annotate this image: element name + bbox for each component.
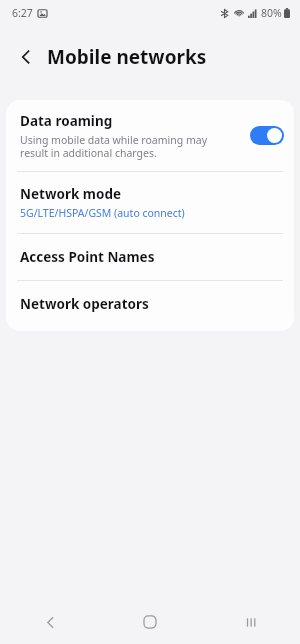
button[interactable]: Home (100, 600, 200, 644)
button[interactable]: Data roaming (6, 100, 294, 171)
button[interactable]: Recent apps (200, 600, 300, 644)
staticText: Network mode (20, 185, 121, 203)
button[interactable]: Access Point Names (6, 234, 294, 280)
staticText: Access Point Names (20, 248, 155, 266)
staticText: Data roaming (20, 112, 113, 130)
staticText: 80% (261, 6, 282, 20)
staticText: 6:27 (12, 6, 33, 20)
button[interactable]: Back (0, 600, 100, 644)
staticText: Using mobile data while roaming may resu… (20, 133, 207, 160)
staticText: 5G/LTE/HSPA/GSM (auto connect) (20, 206, 185, 220)
button[interactable]: Back (8, 39, 44, 75)
button[interactable]: Data roaming toggle (250, 126, 284, 145)
staticText: Mobile networks (47, 44, 207, 70)
button[interactable]: Network mode (6, 172, 294, 233)
staticText: Network operators (20, 295, 149, 313)
button[interactable]: Network operators (6, 281, 294, 327)
